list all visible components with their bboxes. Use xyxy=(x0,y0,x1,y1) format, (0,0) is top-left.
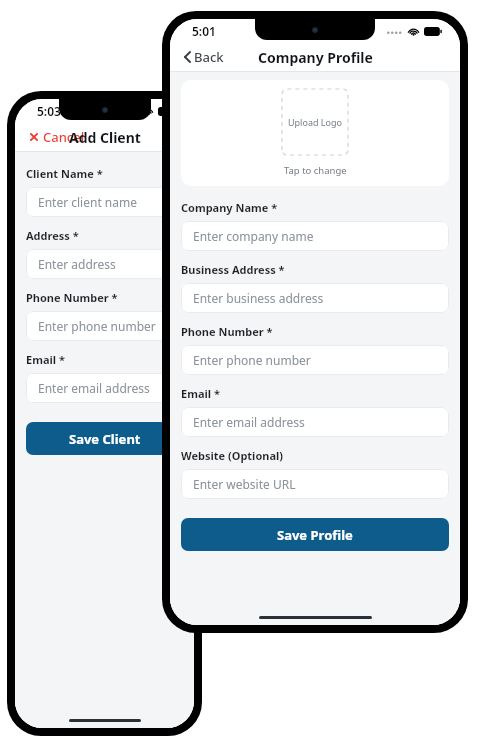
staticText: Add Client xyxy=(69,128,141,147)
staticText: Email * xyxy=(181,386,220,401)
staticText: Save Client xyxy=(69,430,141,448)
staticText: Address * xyxy=(26,228,79,243)
button[interactable]: Enter business address xyxy=(181,283,449,313)
staticText: Upload Logo xyxy=(288,116,342,128)
button[interactable]: Enter email address xyxy=(26,373,183,403)
staticText: Enter phone number xyxy=(193,352,311,368)
staticText: Enter company name xyxy=(193,228,314,244)
button[interactable]: Enter company name xyxy=(181,221,449,251)
button[interactable]: Save Client xyxy=(26,422,183,455)
button[interactable]: Save Profile xyxy=(181,518,449,551)
staticText: Phone Number * xyxy=(26,290,118,305)
staticText: 5:03 xyxy=(37,103,61,119)
button[interactable]: Enter website URL xyxy=(181,469,449,499)
staticText: Tap to change xyxy=(284,164,347,177)
staticText: Enter email address xyxy=(38,380,150,396)
staticText: Phone Number * xyxy=(181,324,273,339)
staticText: Business Address * xyxy=(181,262,285,277)
staticText: Company Profile xyxy=(258,48,373,67)
staticText: Enter client name xyxy=(38,194,137,210)
button[interactable]: Cancel xyxy=(25,125,89,149)
staticText: Enter address xyxy=(38,256,116,272)
staticText: Save Profile xyxy=(277,526,353,544)
staticText: Enter website URL xyxy=(193,476,296,492)
button[interactable]: Enter phone number xyxy=(181,345,449,375)
staticText: Email * xyxy=(26,352,65,367)
staticText: Cancel xyxy=(43,128,85,146)
button[interactable]: Back xyxy=(180,45,228,69)
staticText: Company Name * xyxy=(181,200,278,215)
staticText: Enter business address xyxy=(193,290,324,306)
button[interactable]: Enter address xyxy=(26,249,183,279)
button[interactable]: Upload logo xyxy=(181,80,449,186)
button[interactable]: Enter phone number xyxy=(26,311,183,341)
staticText: Client Name * xyxy=(26,166,103,181)
button[interactable]: Enter email address xyxy=(181,407,449,437)
staticText: Enter phone number xyxy=(38,318,156,334)
staticText: Website (Optional) xyxy=(181,448,284,463)
button[interactable]: Enter client name xyxy=(26,187,183,217)
staticText: Enter email address xyxy=(193,414,305,430)
staticText: 5:01 xyxy=(192,23,216,39)
staticText: Back xyxy=(194,48,224,66)
